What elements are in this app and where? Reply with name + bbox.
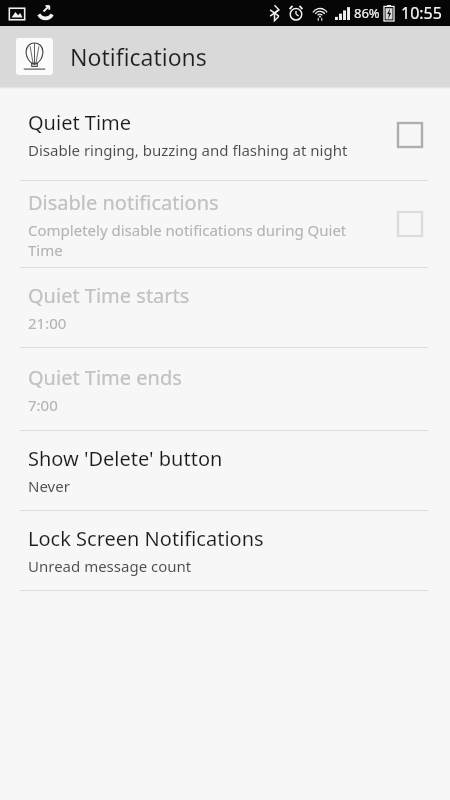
staticText: Unread message count xyxy=(28,556,192,576)
staticText: 21:00 xyxy=(28,313,67,333)
staticText: Show 'Delete' button xyxy=(28,445,223,472)
staticText: Completely disable notifications during … xyxy=(28,220,378,260)
button[interactable]: Disable notifications xyxy=(0,181,450,267)
staticText: Never xyxy=(28,476,70,496)
staticText: 10:55 xyxy=(401,2,442,24)
staticText: 86% xyxy=(354,4,380,22)
button[interactable]: Quiet Time xyxy=(390,115,430,155)
button[interactable]: Quiet Time ends xyxy=(0,348,450,430)
staticText: 7:00 xyxy=(28,395,58,415)
staticText: Quiet Time ends xyxy=(28,364,182,391)
staticText: Notifications xyxy=(70,41,207,72)
button[interactable]: Quiet Time starts xyxy=(0,268,450,347)
button[interactable]: Disable notifications xyxy=(390,204,430,244)
button[interactable]: Lock Screen Notifications xyxy=(0,511,450,590)
staticText: Disable notifications xyxy=(28,189,219,216)
staticText: Disable ringing, buzzing and flashing at… xyxy=(28,140,348,160)
staticText: Quiet Time starts xyxy=(28,282,190,309)
staticText: Quiet Time xyxy=(28,109,132,136)
staticText: Lock Screen Notifications xyxy=(28,525,264,552)
button[interactable]: Quiet Time xyxy=(0,89,450,180)
button[interactable]: Show 'Delete' button xyxy=(0,431,450,510)
